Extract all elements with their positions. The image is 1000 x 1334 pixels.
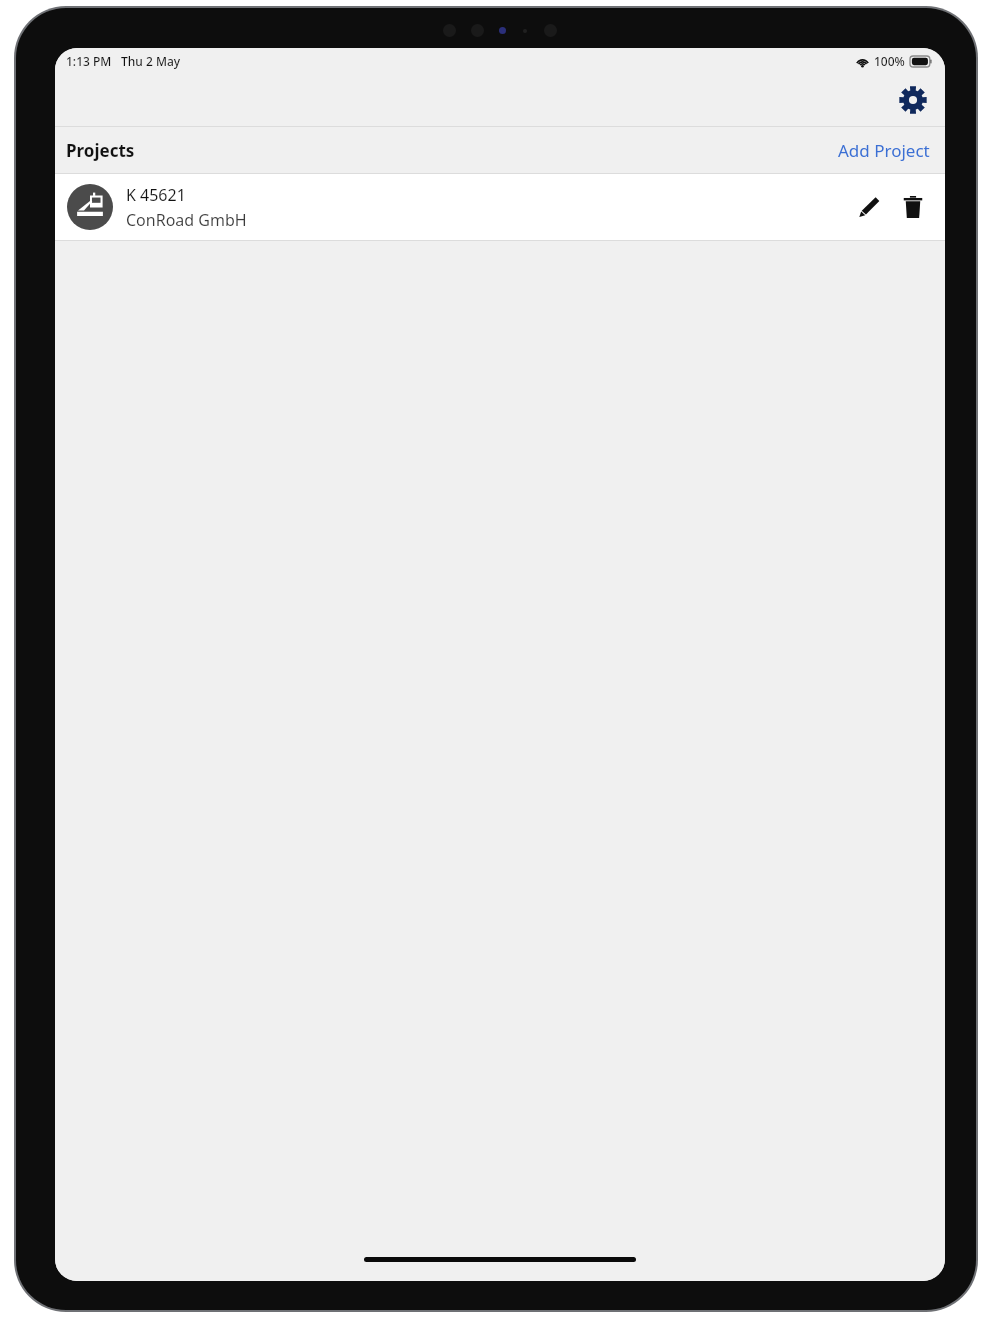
button[interactable]: Delete project	[893, 187, 933, 227]
staticText: Add Project	[838, 139, 930, 162]
button[interactable]: K 45621	[55, 174, 945, 240]
staticText: ConRoad GmbH	[126, 209, 247, 231]
staticText: 100%	[874, 53, 905, 69]
staticText: Thu 2 May	[121, 53, 181, 69]
staticText: Projects	[66, 139, 135, 162]
button[interactable]: Add Project	[834, 133, 934, 168]
button[interactable]: Settings	[891, 78, 935, 122]
staticText: K 45621	[126, 184, 186, 206]
staticText: 1:13 PM	[66, 53, 112, 69]
button[interactable]: Edit project	[849, 187, 889, 227]
